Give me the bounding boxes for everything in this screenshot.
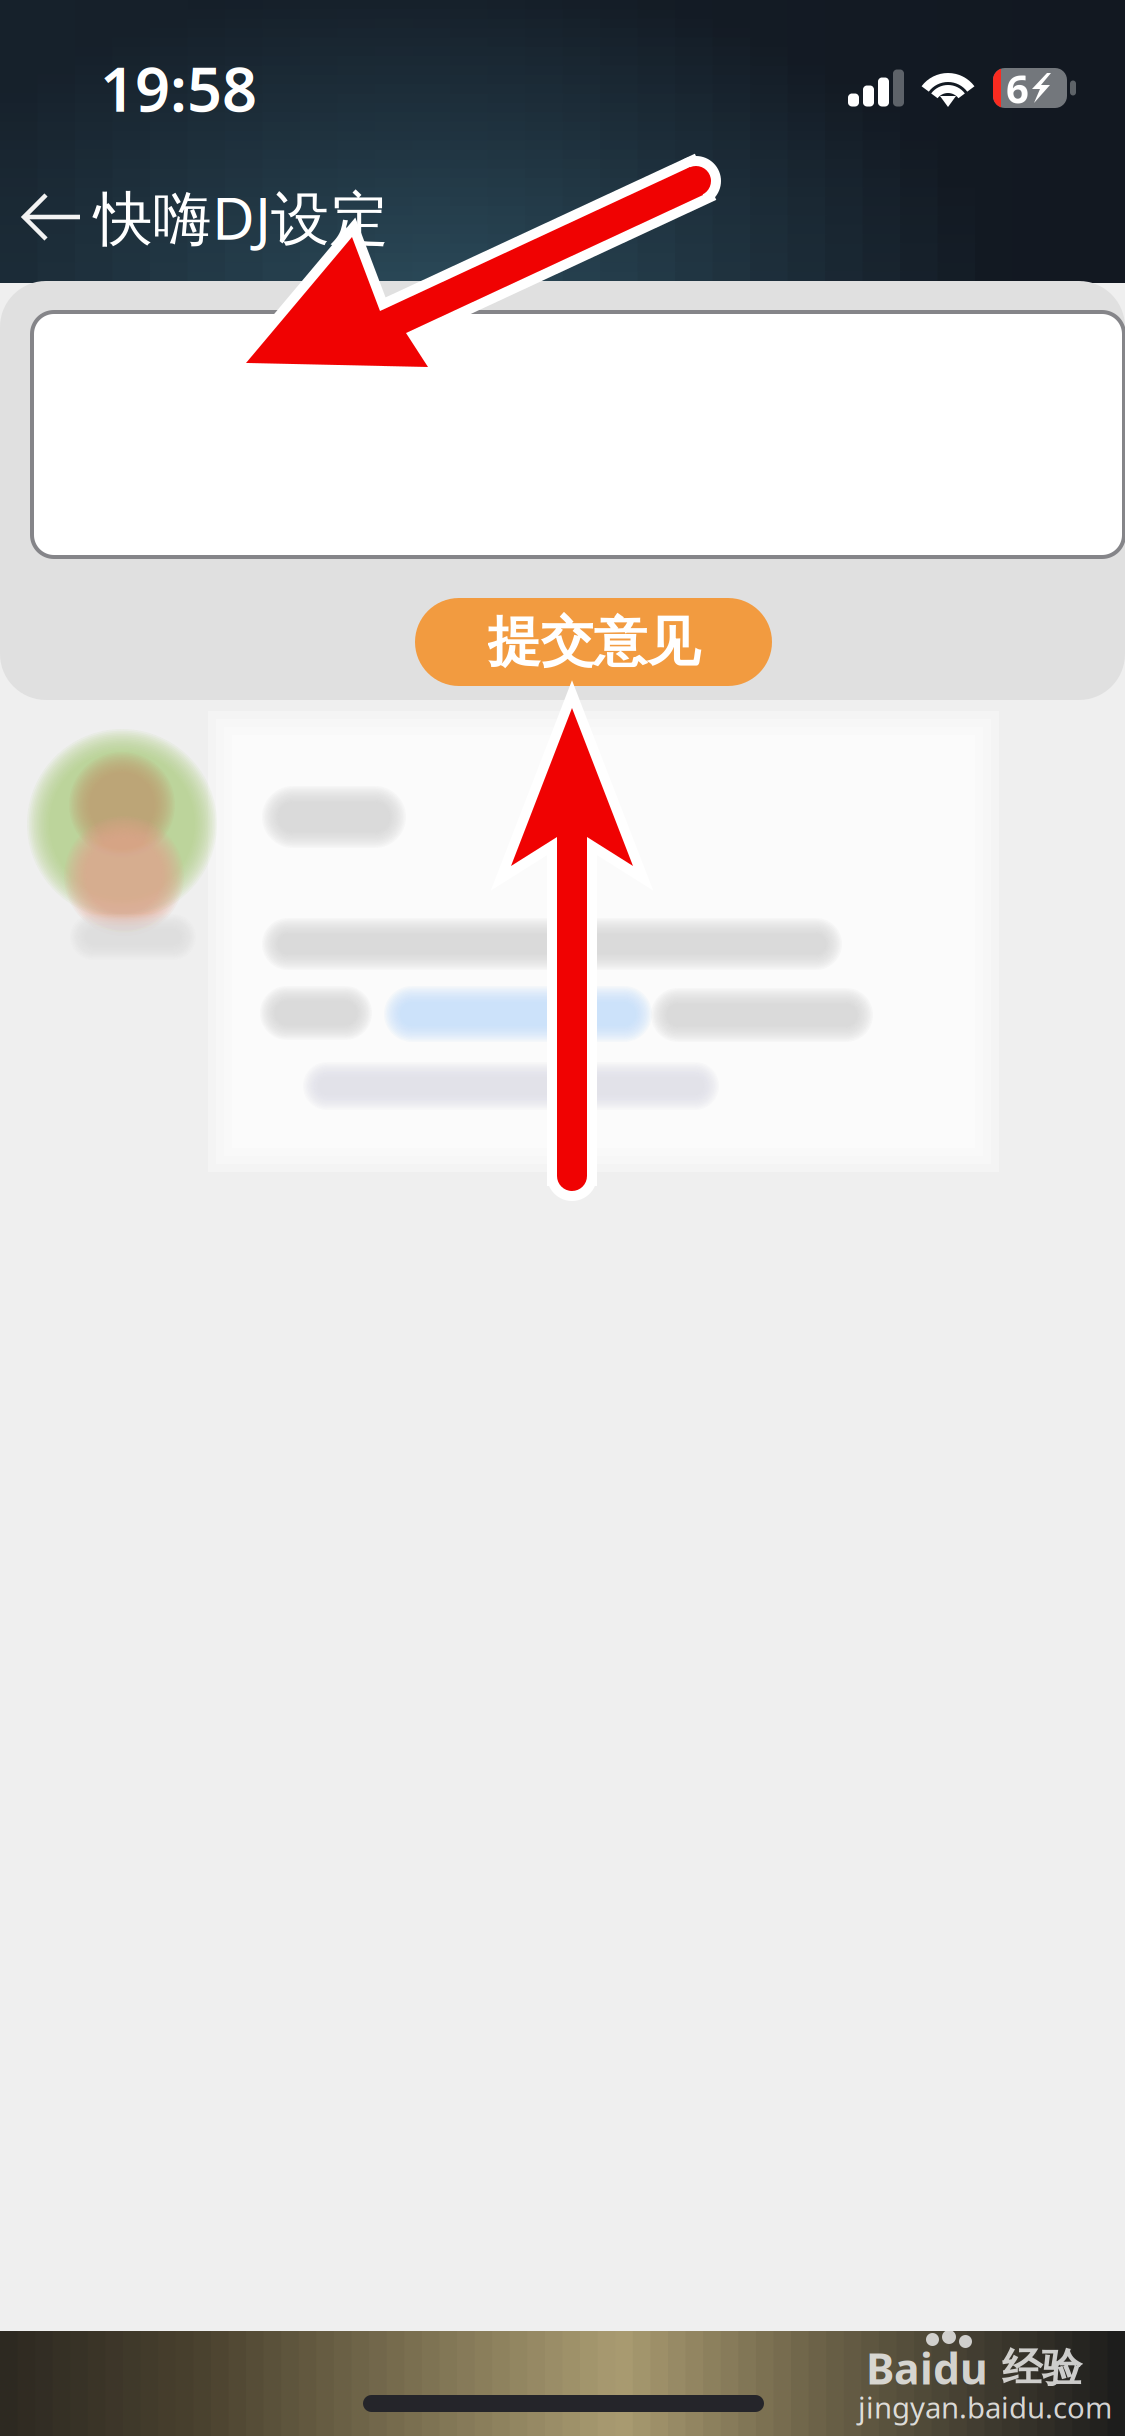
staticText: 19:58 — [100, 47, 257, 129]
staticText: 6 — [1006, 61, 1029, 114]
staticText: jingyan.baidu.com — [858, 2387, 1112, 2426]
staticText: Baidu — [866, 2340, 988, 2396]
staticText: 快嗨DJ设定 — [94, 178, 389, 256]
button[interactable]: 快嗨DJ设定 — [0, 172, 1125, 262]
button[interactable]: 提交意见 — [415, 598, 772, 686]
staticText: 经验 — [1002, 2343, 1082, 2392]
staticText: 提交意见 — [487, 609, 699, 675]
